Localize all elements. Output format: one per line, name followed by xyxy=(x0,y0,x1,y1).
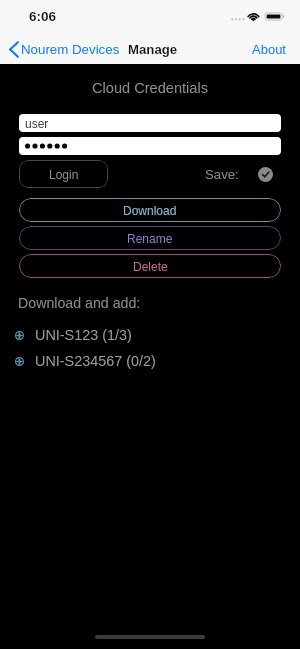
staticText: user xyxy=(25,117,49,130)
staticText: 6:06 xyxy=(29,9,57,24)
button[interactable]: Rename xyxy=(19,226,281,250)
button[interactable]: UNI-S123 (1/3) xyxy=(0,325,300,345)
staticText: UNI-S234567 (0/2) xyxy=(35,353,156,369)
staticText: Manage xyxy=(128,42,178,57)
staticText: Nourem Devices xyxy=(21,42,120,57)
staticText: UNI-S123 (1/3) xyxy=(35,327,132,343)
button[interactable]: Nourem Devices xyxy=(0,34,124,64)
button[interactable]: Save credentials xyxy=(258,167,273,182)
staticText: Save: xyxy=(205,167,239,182)
staticText: Delete xyxy=(133,260,168,273)
button[interactable]: Delete xyxy=(19,254,281,278)
button[interactable]: Download xyxy=(19,198,281,222)
button[interactable]: UNI-S234567 (0/2) xyxy=(0,351,300,371)
button[interactable]: Password xyxy=(19,137,281,155)
staticText: Cloud Credentials xyxy=(0,80,300,96)
button[interactable]: About xyxy=(242,34,300,64)
staticText: Rename xyxy=(127,232,173,245)
staticText: Download and add: xyxy=(18,295,141,311)
staticText: Login xyxy=(49,168,79,181)
button[interactable]: Login xyxy=(19,160,108,188)
button[interactable]: user xyxy=(19,114,281,132)
staticText: Download xyxy=(123,204,177,217)
